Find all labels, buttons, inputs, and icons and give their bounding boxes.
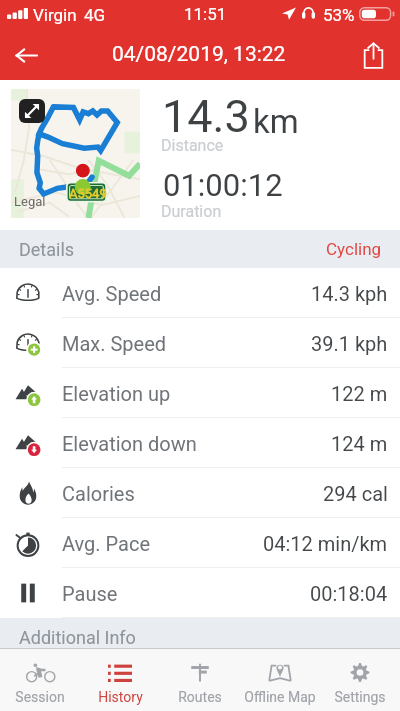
staticText: Additional Info xyxy=(19,627,136,648)
button[interactable]: Expand map xyxy=(19,99,45,123)
staticText: 14.3 kph xyxy=(311,282,388,305)
staticText: Virgin xyxy=(33,5,77,25)
staticText: 04:12 min/km xyxy=(263,532,388,555)
staticText: Cycling xyxy=(326,239,382,259)
staticText: History xyxy=(98,689,143,705)
staticText: 14.3 xyxy=(162,90,250,143)
button[interactable]: Route map xyxy=(11,89,140,218)
staticText: Routes xyxy=(178,689,222,705)
button[interactable]: Share xyxy=(351,33,395,77)
staticText: Settings xyxy=(334,689,386,705)
staticText: 4G xyxy=(84,5,106,25)
staticText: 39.1 kph xyxy=(311,332,388,355)
button[interactable]: Elevation down xyxy=(0,418,400,468)
button[interactable]: Back xyxy=(4,33,48,77)
staticText: 11:51 xyxy=(184,4,227,24)
staticText: 01:00:12 xyxy=(163,167,283,203)
button[interactable]: Settings xyxy=(320,649,400,711)
button[interactable]: Session xyxy=(0,649,80,711)
button[interactable]: Max. Speed xyxy=(0,318,400,368)
staticText: 124 m xyxy=(331,432,388,455)
staticText: Distance xyxy=(161,136,224,155)
button[interactable]: Avg. Speed xyxy=(0,268,400,318)
staticText: Details xyxy=(19,239,75,260)
button[interactable]: Elevation up xyxy=(0,368,400,418)
staticText: Pause xyxy=(62,582,118,605)
staticText: Offline Map xyxy=(244,689,316,705)
button[interactable]: History xyxy=(80,649,160,711)
staticText: 294 cal xyxy=(323,482,388,505)
button[interactable]: Calories xyxy=(0,468,400,518)
button[interactable]: Pause xyxy=(0,568,400,618)
staticText: 122 m xyxy=(331,382,388,405)
staticText: Calories xyxy=(62,482,135,505)
staticText: 04/08/2019, 13:22 xyxy=(112,42,286,67)
staticText: Avg. Speed xyxy=(62,282,162,305)
staticText: Elevation up xyxy=(62,382,171,405)
button[interactable]: Routes xyxy=(160,649,240,711)
staticText: Legal xyxy=(14,194,46,209)
staticText: km xyxy=(253,102,299,141)
staticText: Avg. Pace xyxy=(62,532,151,555)
button[interactable]: Offline Map xyxy=(240,649,320,711)
button[interactable]: Avg. Pace xyxy=(0,518,400,568)
staticText: A5549 xyxy=(69,186,107,201)
staticText: Duration xyxy=(161,202,222,221)
staticText: 53% xyxy=(323,5,355,25)
staticText: Max. Speed xyxy=(62,332,167,355)
staticText: 00:18:04 xyxy=(310,582,388,605)
staticText: Elevation down xyxy=(62,432,197,455)
staticText: Session xyxy=(15,689,65,705)
